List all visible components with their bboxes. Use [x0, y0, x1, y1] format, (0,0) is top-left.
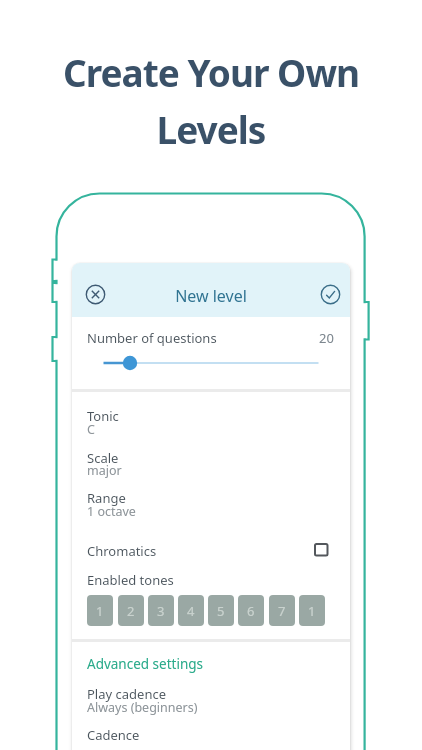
staticText: Scale	[87, 449, 119, 467]
button[interactable]: 2	[118, 595, 144, 626]
button[interactable]: 6	[238, 595, 264, 626]
staticText: Cadence	[87, 726, 140, 744]
staticText: 1	[96, 602, 104, 620]
button[interactable]: Advanced settings	[87, 655, 204, 673]
staticText: 20	[319, 329, 334, 347]
staticText: 2	[127, 602, 135, 620]
staticText: 5	[217, 602, 225, 620]
button[interactable]: 4	[178, 595, 204, 626]
button[interactable]: 3	[148, 595, 174, 626]
button[interactable]: 5	[208, 595, 234, 626]
staticText: Create Your Own	[0, 47, 422, 97]
staticText: 1	[308, 602, 316, 620]
staticText: 7	[278, 602, 286, 620]
staticText: 1 octave	[87, 503, 136, 520]
button[interactable]	[86, 285, 105, 304]
staticText: 3	[157, 602, 165, 620]
staticText: Always (beginners)	[87, 699, 198, 716]
staticText: 6	[247, 602, 255, 620]
staticText: Advanced settings	[87, 655, 204, 673]
button[interactable]: 7	[269, 595, 295, 626]
button[interactable]	[321, 285, 340, 304]
staticText: 4	[187, 602, 195, 620]
staticText: C	[87, 421, 95, 438]
staticText: Chromatics	[87, 542, 157, 560]
button[interactable]: 1	[87, 595, 113, 626]
staticText: Levels	[0, 104, 422, 154]
staticText: major	[87, 462, 122, 479]
button[interactable]	[314, 543, 328, 556]
staticText: New level	[72, 285, 350, 307]
staticText: Play cadence	[87, 685, 166, 703]
staticText: Tonic	[87, 407, 119, 425]
staticText: Number of questions	[87, 329, 217, 347]
staticText: Enabled tones	[87, 571, 174, 589]
staticText: Range	[87, 489, 126, 507]
button[interactable]: 1	[299, 595, 325, 626]
